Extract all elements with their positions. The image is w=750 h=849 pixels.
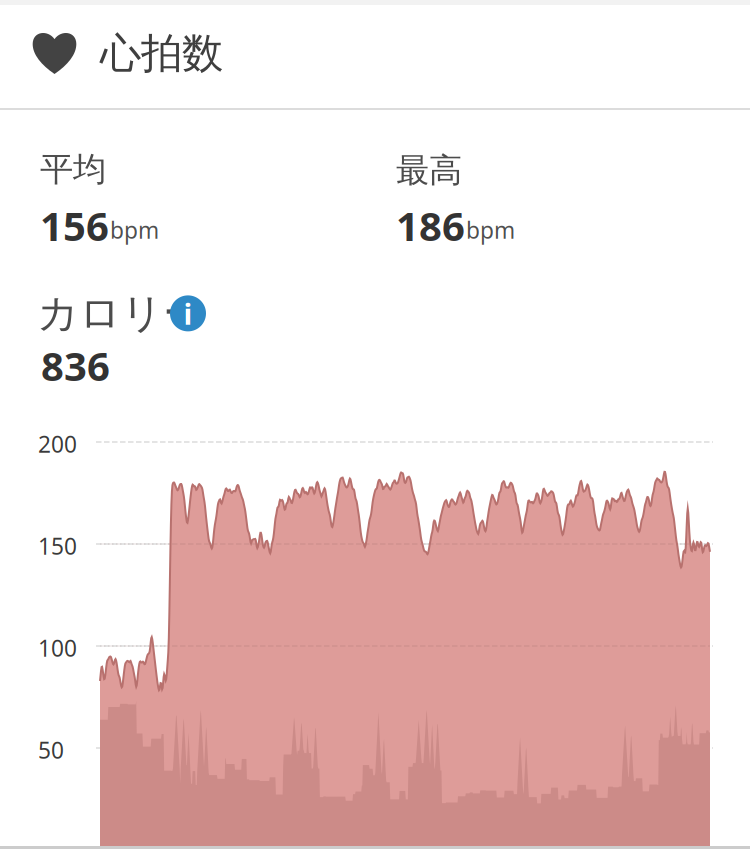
staticText: 50 xyxy=(38,735,64,765)
button[interactable]: カロリーの詳細 xyxy=(37,292,206,334)
staticText: bpm xyxy=(466,215,515,245)
staticText: 836 xyxy=(41,339,110,392)
staticText: 平均 xyxy=(40,149,106,190)
staticText: 最高 xyxy=(396,150,462,191)
staticText: bpm xyxy=(110,215,159,245)
staticText: i xyxy=(183,294,192,333)
staticText: カロリー xyxy=(37,288,204,339)
staticText: 150 xyxy=(38,531,77,561)
staticText: 156 xyxy=(40,199,109,252)
staticText: 心拍数 xyxy=(100,28,223,79)
staticText: 186 xyxy=(396,199,465,252)
staticText: 100 xyxy=(38,633,77,663)
staticText: 200 xyxy=(38,429,77,459)
